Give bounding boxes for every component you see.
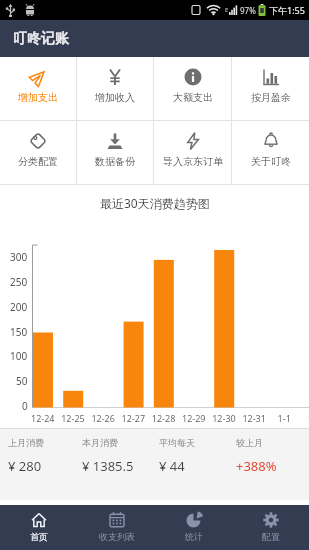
staticText: 上月消费 bbox=[8, 437, 44, 448]
button[interactable]: 数据备份 bbox=[77, 121, 153, 184]
staticText: +388% bbox=[236, 457, 277, 475]
staticText: 最近30天消费趋势图 bbox=[100, 195, 210, 211]
staticText: 大额支出 bbox=[173, 91, 213, 104]
button[interactable]: 导入京东订单 bbox=[154, 121, 231, 184]
button[interactable]: 增加收入 bbox=[77, 57, 153, 120]
button[interactable]: 大额支出 bbox=[154, 57, 231, 120]
staticText: 收支列表 bbox=[99, 531, 135, 542]
button[interactable]: 收支列表 bbox=[78, 505, 155, 550]
button[interactable]: 关于叮咚 bbox=[232, 121, 309, 184]
button[interactable]: 本月消费 bbox=[78, 429, 155, 500]
staticText: 较上月 bbox=[236, 437, 263, 448]
button[interactable]: 首页 bbox=[0, 505, 78, 550]
staticText: 首页 bbox=[30, 531, 48, 542]
staticText: 按月盈余 bbox=[251, 91, 291, 104]
button[interactable]: 平均每天 bbox=[155, 429, 232, 500]
staticText: 本月消费 bbox=[82, 437, 118, 448]
staticText: 增加支出 bbox=[18, 91, 58, 104]
staticText: 平均每天 bbox=[159, 437, 195, 448]
staticText: 统计 bbox=[185, 531, 203, 542]
staticText: 分类配置 bbox=[18, 155, 58, 168]
staticText: 配置 bbox=[262, 531, 280, 542]
staticText: E bbox=[225, 6, 229, 14]
button[interactable]: 增加支出 bbox=[0, 57, 76, 120]
staticText: 增加收入 bbox=[95, 91, 135, 104]
staticText: 叮咚记账 bbox=[13, 30, 69, 48]
button[interactable]: 统计 bbox=[155, 505, 232, 550]
staticText: 97% bbox=[240, 5, 256, 16]
staticText: ¥ 44 bbox=[159, 457, 185, 475]
staticText: 数据备份 bbox=[95, 155, 135, 168]
staticText: ¥ 280 bbox=[8, 457, 42, 475]
staticText: 关于叮咚 bbox=[251, 155, 291, 168]
button[interactable]: 较上月 bbox=[232, 429, 309, 500]
staticText: 导入京东订单 bbox=[163, 155, 223, 168]
button[interactable]: 按月盈余 bbox=[232, 57, 309, 120]
staticText: 下午1:55 bbox=[269, 4, 305, 16]
staticText: ¥ 1385.5 bbox=[82, 457, 134, 475]
button[interactable]: 配置 bbox=[232, 505, 309, 550]
button[interactable]: 上月消费 bbox=[0, 429, 78, 500]
button[interactable]: 分类配置 bbox=[0, 121, 76, 184]
